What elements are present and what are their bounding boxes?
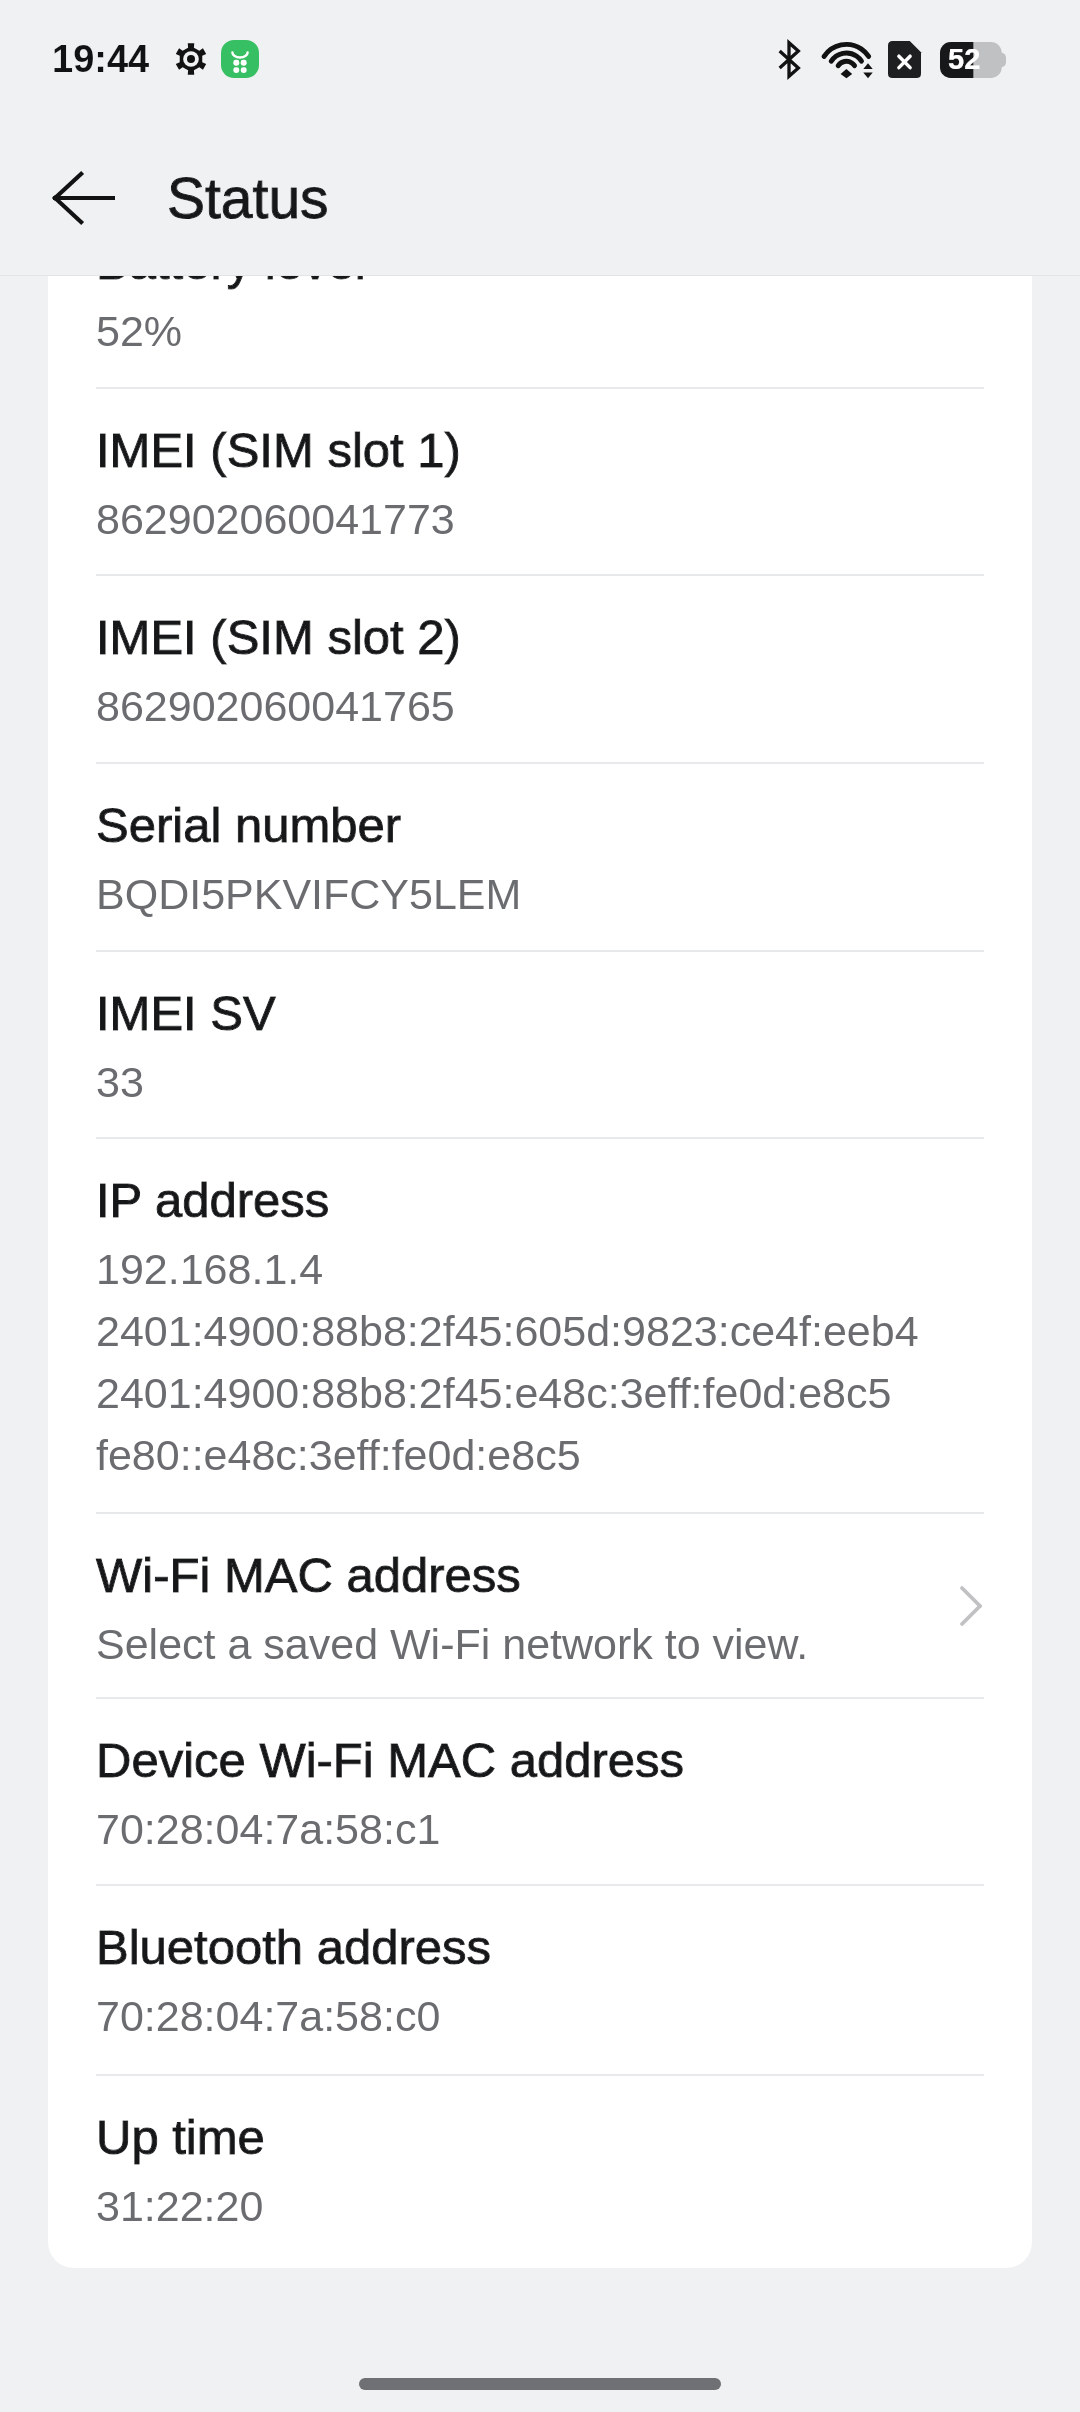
button[interactable]: IMEI (SIM slot 2) <box>48 574 1032 762</box>
staticText: Bluetooth address <box>96 1920 491 1975</box>
button[interactable]: Serial number <box>48 762 1032 950</box>
staticText: IP address <box>96 1173 330 1228</box>
staticText: Serial number <box>96 798 402 853</box>
staticText: Serial number <box>96 798 402 853</box>
staticText: Up time <box>96 2110 265 2165</box>
button[interactable]: Up time <box>48 2074 1032 2262</box>
staticText: IMEI (SIM slot 1) <box>96 423 461 478</box>
staticText: 862902060041765 <box>96 682 455 730</box>
staticText: IMEI (SIM slot 2) <box>96 610 461 665</box>
staticText: IP address <box>96 1173 330 1228</box>
button[interactable]: IP address <box>48 1137 1032 1514</box>
staticText: IMEI SV <box>96 986 276 1041</box>
staticText: Battery level <box>96 235 366 290</box>
staticText: Wi-Fi MAC address <box>96 1548 521 1603</box>
staticText: 19:44 <box>52 38 150 80</box>
staticText: 70:28:04:7a:58:c0 <box>96 1992 441 2040</box>
staticText: IMEI (SIM slot 2) <box>96 610 461 665</box>
staticText: Status <box>167 166 329 230</box>
staticText: Device Wi-Fi MAC address <box>96 1733 685 1788</box>
staticText: 2401:4900:88b8:2f45:605d:9823:ce4f:eeb4 <box>96 1307 919 1355</box>
staticText: 70:28:04:7a:58:c1 <box>96 1805 441 1853</box>
staticText: Status <box>167 166 329 230</box>
staticText: BQDI5PKVIFCY5LEM <box>96 870 522 918</box>
staticText: fe80::e48c:3eff:fe0d:e8c5 <box>96 1431 581 1479</box>
staticText: Battery level <box>96 235 366 290</box>
staticText: Select a saved Wi-Fi network to view. <box>96 1620 809 1668</box>
staticText: 862902060041773 <box>96 495 455 543</box>
staticText: IMEI (SIM slot 1) <box>96 423 461 478</box>
button[interactable]: IMEI SV <box>48 950 1032 1138</box>
button[interactable]: Device Wi-Fi MAC address <box>48 1697 1032 1885</box>
staticText: 52% <box>96 307 183 355</box>
button[interactable]: Bluetooth address <box>48 1884 1032 2072</box>
staticText: 192.168.1.4 <box>96 1245 324 1293</box>
button[interactable]: Battery level <box>48 199 1032 387</box>
staticText: Up time <box>96 2110 265 2165</box>
staticText: IMEI SV <box>96 986 276 1041</box>
staticText: 31:22:20 <box>96 2182 264 2230</box>
staticText: 2401:4900:88b8:2f45:e48c:3eff:fe0d:e8c5 <box>96 1369 892 1417</box>
staticText: Bluetooth address <box>96 1920 491 1975</box>
staticText: 33 <box>96 1058 144 1106</box>
button[interactable]: Back <box>32 146 136 250</box>
button[interactable]: Wi-Fi MAC address <box>48 1512 1032 1700</box>
button[interactable]: IMEI (SIM slot 1) <box>48 387 1032 575</box>
staticText: Device Wi-Fi MAC address <box>96 1733 685 1788</box>
staticText: Wi-Fi MAC address <box>96 1548 521 1603</box>
staticText: 52 <box>948 43 981 75</box>
